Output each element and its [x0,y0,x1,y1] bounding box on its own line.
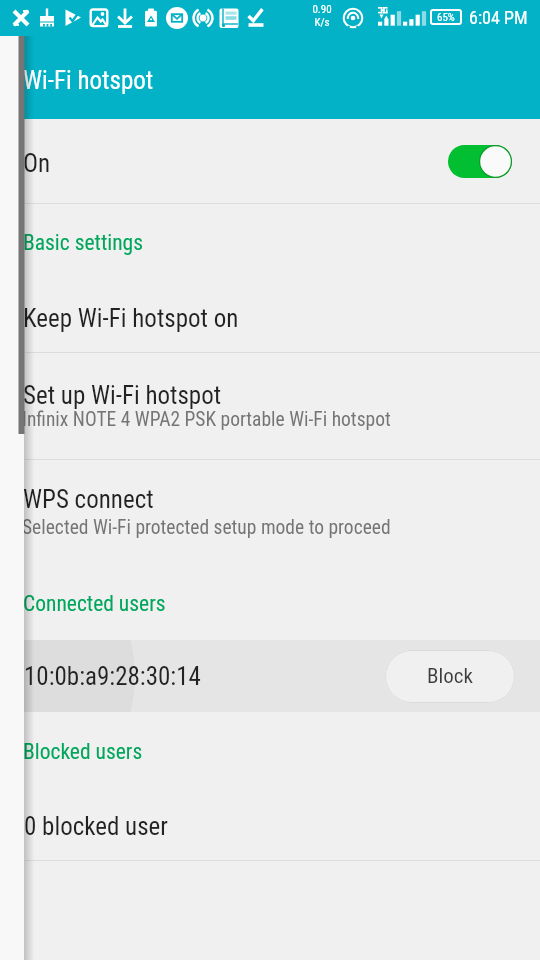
staticText: Infinix NOTE 4 WPA2 PSK portable Wi-Fi h… [22,408,391,431]
staticText: On [23,149,51,178]
button[interactable]: Keep Wi-Fi hotspot on [0,280,540,352]
staticText: 6:04 PM [469,7,528,28]
button[interactable]: On [0,119,540,203]
staticText: Keep Wi-Fi hotspot on [23,304,239,333]
staticText: Set up Wi-Fi hotspot [23,381,222,410]
staticText: 65% [437,11,455,24]
staticText: 10:0b:a9:28:30:14 [24,662,201,691]
staticText: WPS connect [23,485,154,514]
staticText: 0 blocked user [24,812,168,841]
staticText: 0.90 K/s [312,3,332,29]
button[interactable]: Block [385,650,515,703]
button[interactable]: 10:0b:a9:28:30:14 [0,640,540,712]
staticText: Selected Wi-Fi protected setup mode to p… [22,516,391,539]
button[interactable]: 0 blocked user [0,790,540,860]
staticText: Connected users [23,591,166,616]
staticText: Wi-Fi hotspot [23,66,154,95]
staticText: Block [427,664,473,689]
button[interactable]: Set up Wi-Fi hotspot [0,353,540,459]
staticText: Blocked users [23,739,143,764]
staticText: Basic settings [23,230,144,255]
button[interactable]: WPS connect [0,460,540,560]
button[interactable]: Wi-Fi hotspot [0,38,540,119]
